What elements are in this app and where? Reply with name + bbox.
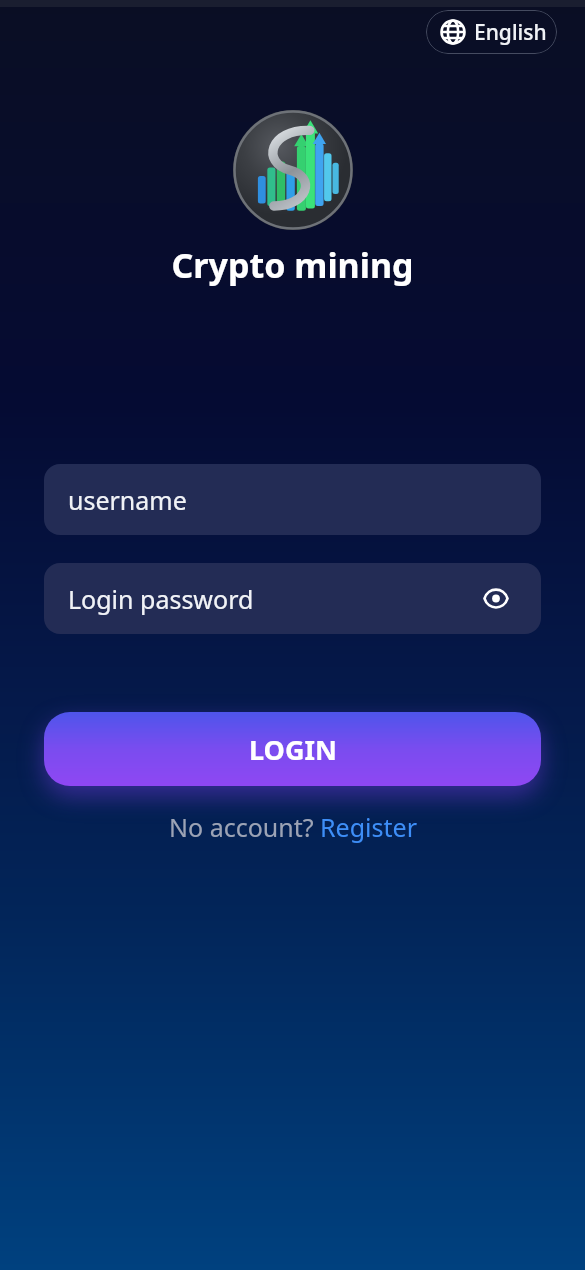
staticText: Crypto mining bbox=[0, 242, 585, 288]
button[interactable]: LOGIN bbox=[44, 712, 541, 786]
staticText: LOGIN bbox=[249, 731, 337, 768]
staticText: username bbox=[68, 483, 187, 517]
staticText: Login password bbox=[68, 582, 254, 616]
button[interactable]: English bbox=[426, 10, 557, 54]
staticText: English bbox=[474, 18, 547, 47]
button[interactable]: Login password bbox=[44, 563, 541, 634]
button[interactable]: username bbox=[44, 464, 541, 535]
button[interactable]: No account? Register bbox=[169, 810, 417, 844]
